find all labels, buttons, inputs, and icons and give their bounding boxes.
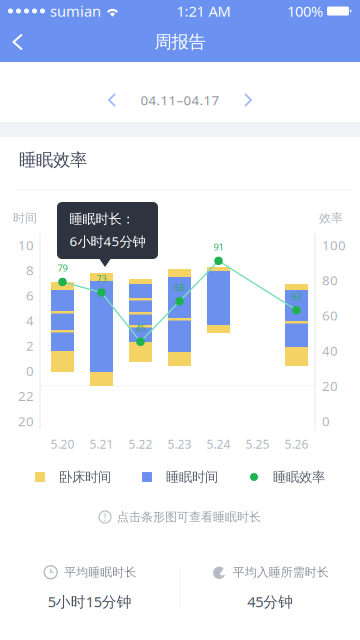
staticText: 45 <box>135 322 145 334</box>
button[interactable]: Previous week <box>95 83 128 117</box>
staticText: 5.23 <box>167 436 191 452</box>
staticText: 5.26 <box>284 436 308 452</box>
staticText: 8 <box>26 261 34 279</box>
staticText: 睡眠效率 <box>19 149 87 171</box>
staticText: 2 <box>26 337 34 354</box>
staticText: 20 <box>322 377 338 395</box>
button[interactable]: Back <box>0 22 36 62</box>
staticText: 40 <box>322 342 338 359</box>
staticText: 60 <box>322 306 338 324</box>
staticText: 91 <box>213 241 223 253</box>
staticText: 时间 <box>13 211 37 225</box>
staticText: 睡眠效率 <box>273 469 325 485</box>
staticText: 睡眠时间 <box>166 469 218 485</box>
staticText: 73 <box>96 272 106 285</box>
staticText: ! <box>103 510 106 524</box>
staticText: 68 <box>174 281 184 293</box>
staticText: 睡眠时长： <box>69 211 134 227</box>
staticText: sumian <box>50 1 101 21</box>
staticText: 5.24 <box>206 436 230 452</box>
staticText: 6 <box>26 286 34 304</box>
staticText: 20 <box>18 412 34 430</box>
staticText: 0 <box>322 412 330 430</box>
staticText: 周报告 <box>154 31 205 53</box>
staticText: 45分钟 <box>247 592 293 611</box>
staticText: 平均入睡所需时长 <box>233 565 329 580</box>
staticText: 点击条形图可查看睡眠时长 <box>117 510 261 524</box>
staticText: 5.20 <box>50 436 74 452</box>
staticText: 63 <box>291 290 301 302</box>
staticText: 0 <box>26 362 34 380</box>
staticText: 5.25 <box>245 436 269 452</box>
staticText: 80 <box>322 271 338 289</box>
button[interactable]: Next week <box>231 83 264 117</box>
staticText: 效率 <box>319 211 343 225</box>
staticText: 6小时45分钟 <box>69 232 145 250</box>
staticText: 22 <box>18 387 34 405</box>
staticText: 100% <box>287 1 323 21</box>
staticText: 10 <box>18 236 34 254</box>
staticText: 79 <box>57 262 67 274</box>
staticText: 04.11–04.17 <box>140 91 219 109</box>
staticText: 卧床时间 <box>59 469 111 485</box>
staticText: 平均睡眠时长 <box>64 565 136 580</box>
staticText: 100 <box>322 236 346 254</box>
staticText: 1:21 AM <box>176 1 230 21</box>
staticText: 5.21 <box>89 436 113 452</box>
staticText: 4 <box>26 312 34 329</box>
staticText: 5.22 <box>128 436 152 452</box>
staticText: 5小时15分钟 <box>48 592 132 611</box>
